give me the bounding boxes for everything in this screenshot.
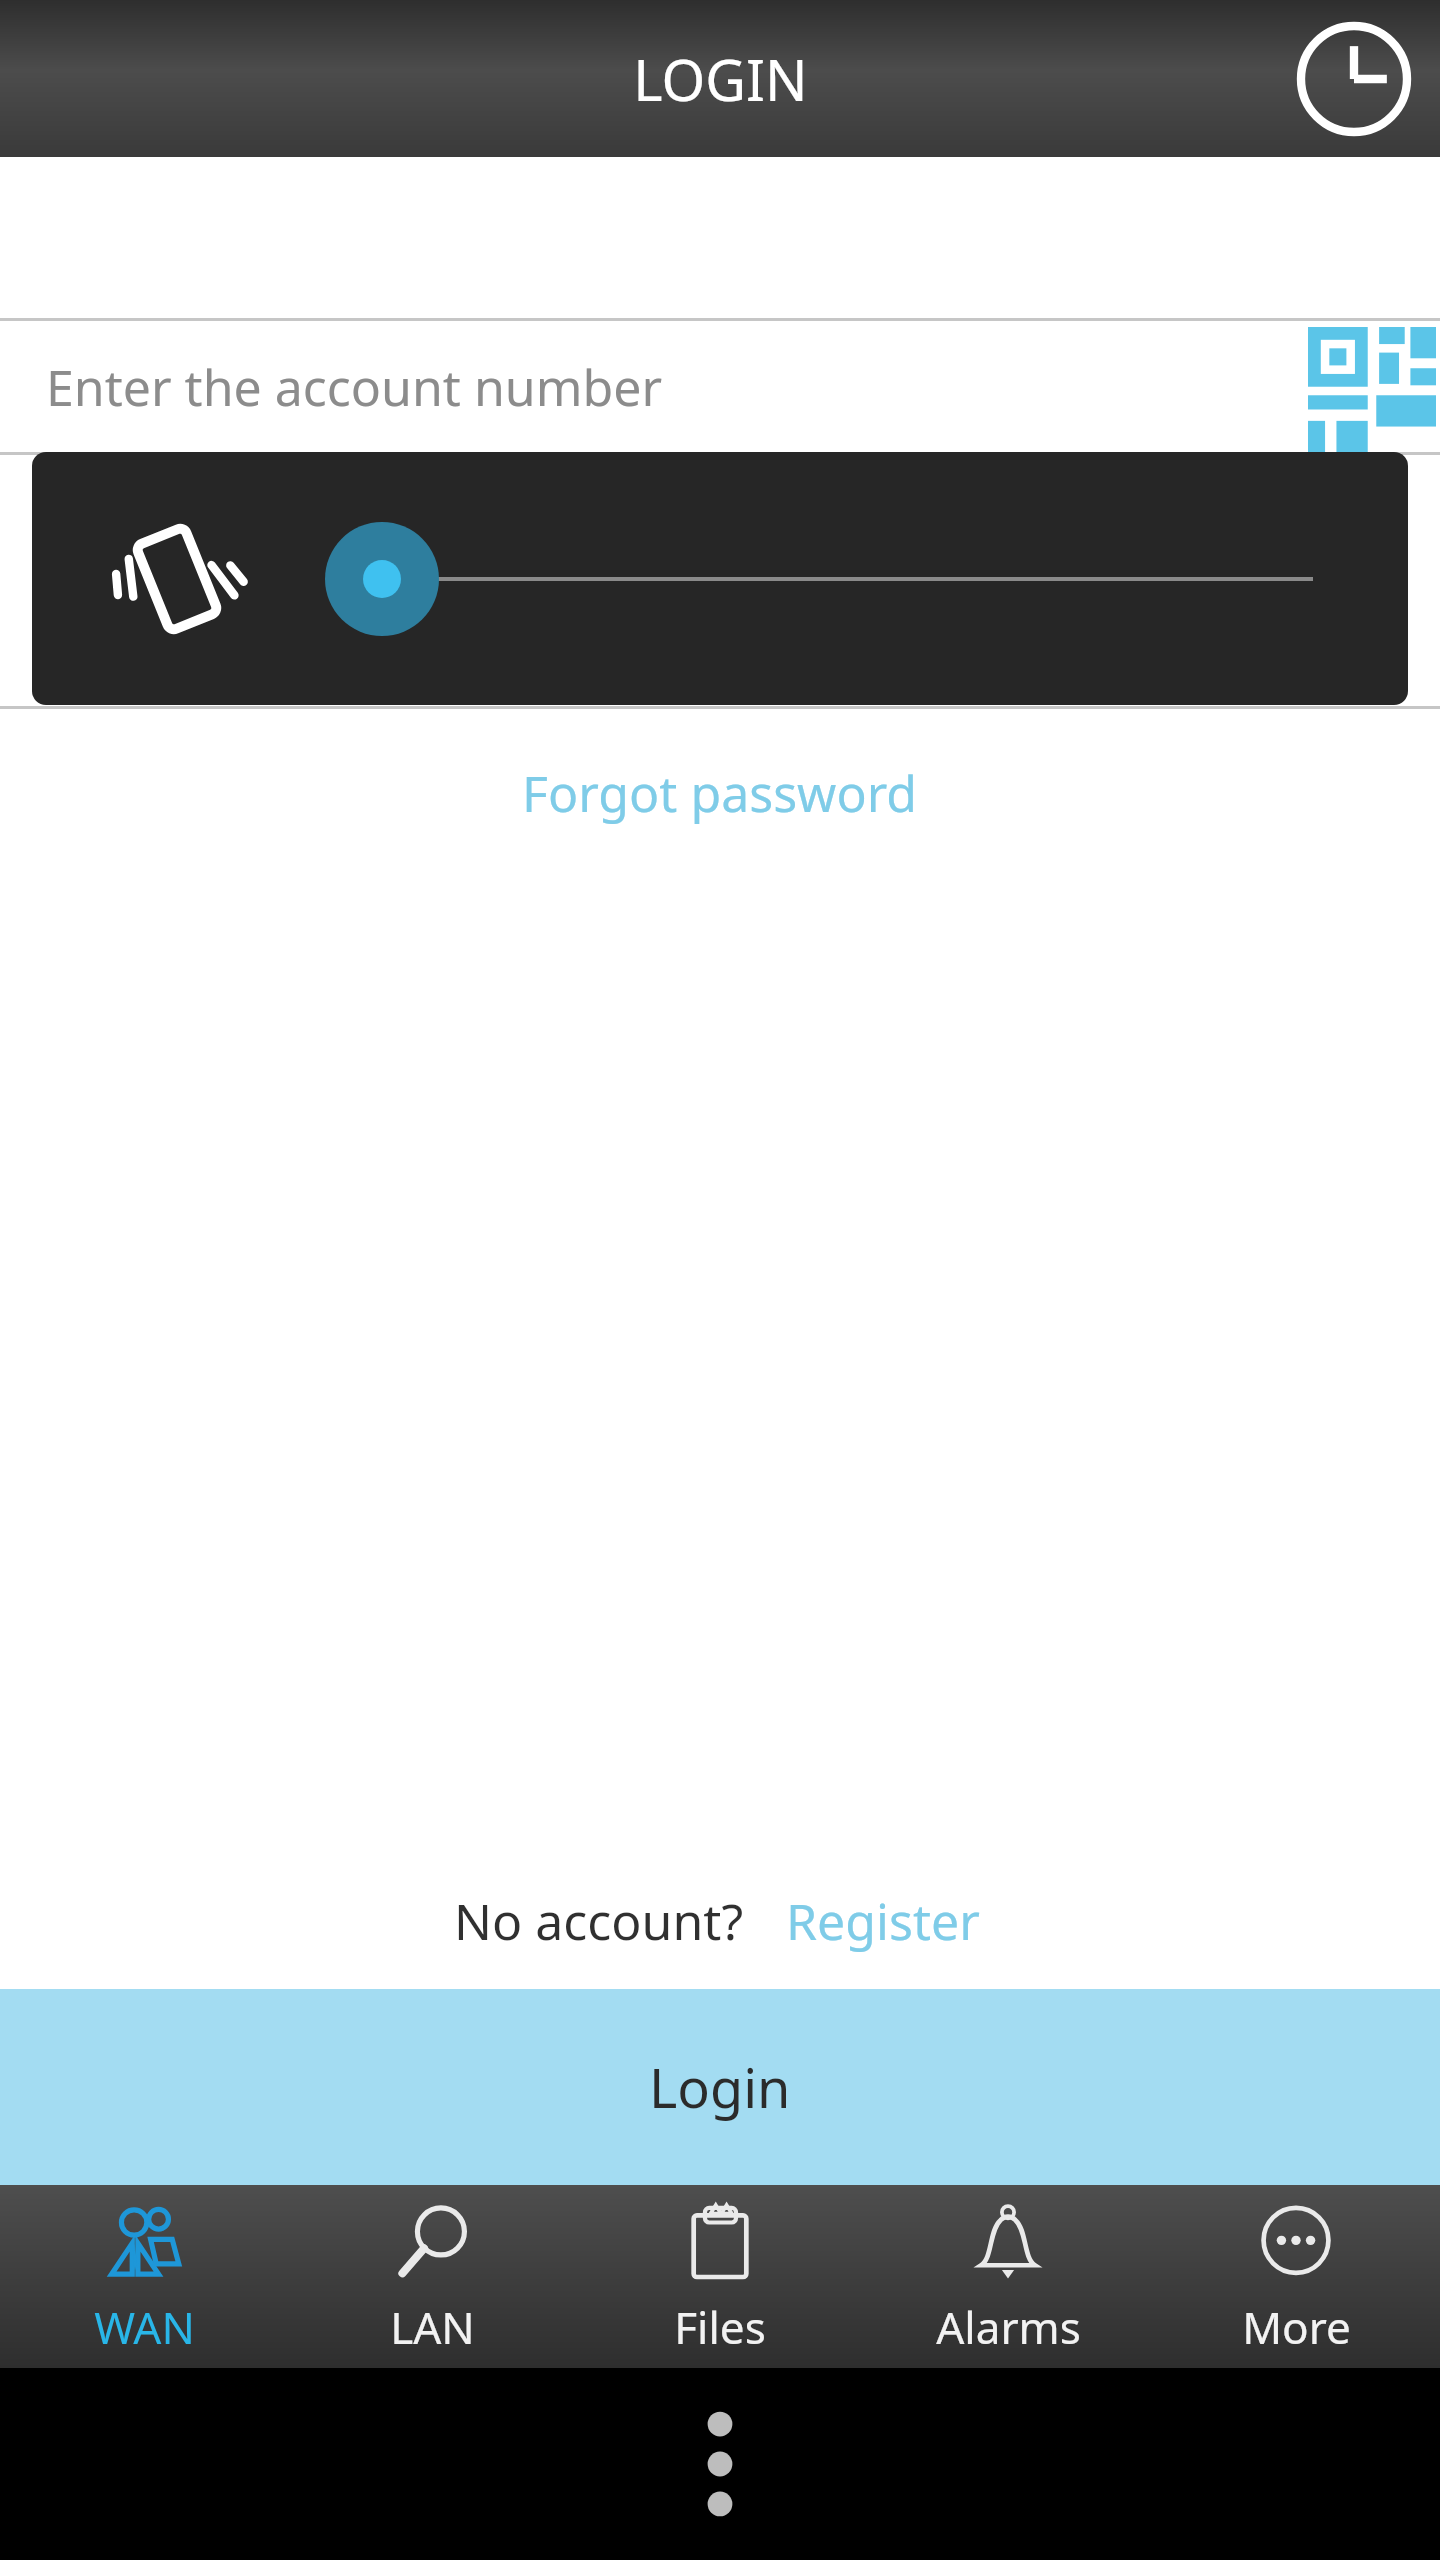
staticText: LAN <box>390 2297 475 2357</box>
button[interactable] <box>0 455 1440 706</box>
button[interactable]: Register <box>780 1879 986 1963</box>
button[interactable]: WAN <box>0 2185 288 2368</box>
staticText: Login <box>649 2050 791 2124</box>
staticText: Register <box>786 1887 980 1955</box>
staticText: No account? <box>454 1887 744 1955</box>
button[interactable]: Forgot password <box>502 749 938 837</box>
button[interactable]: More <box>1152 2185 1440 2368</box>
button[interactable]: Alarms <box>864 2185 1152 2368</box>
staticText: Alarms <box>936 2297 1081 2357</box>
other: Vibration <box>110 512 244 646</box>
button[interactable]: Files <box>576 2185 864 2368</box>
button[interactable]: Login <box>0 1989 1440 2185</box>
button[interactable]: Enter the account number <box>0 321 1440 452</box>
button[interactable]: Vibration <box>32 452 1408 705</box>
button[interactable]: LAN <box>288 2185 576 2368</box>
button[interactable]: More options <box>660 2389 780 2539</box>
button[interactable]: Scan QR code <box>1304 327 1440 447</box>
staticText: LOGIN <box>633 41 808 117</box>
staticText: WAN <box>94 2297 195 2357</box>
staticText: More <box>1242 2297 1351 2357</box>
staticText: Forgot password <box>522 759 918 827</box>
staticText: Files <box>674 2297 766 2357</box>
button[interactable]: History <box>1288 13 1420 145</box>
staticText: Enter the account number <box>46 353 663 421</box>
